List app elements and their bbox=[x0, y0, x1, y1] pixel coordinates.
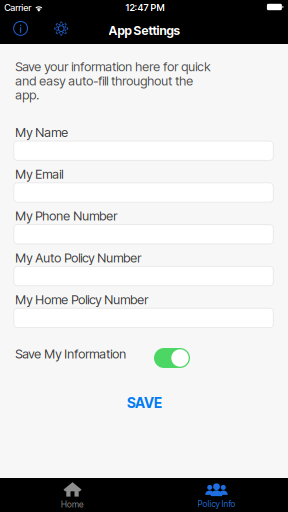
button[interactable]: Home bbox=[36, 481, 108, 509]
staticText: My Auto Policy Number bbox=[15, 250, 141, 265]
staticText: Save your information here for quick bbox=[15, 59, 210, 74]
staticText: Policy Info bbox=[197, 499, 235, 509]
staticText: app. bbox=[15, 87, 39, 103]
staticText: Home bbox=[61, 499, 84, 510]
staticText: 12:47 PM bbox=[125, 2, 164, 13]
staticText: My Name bbox=[15, 125, 68, 140]
staticText: My Email bbox=[15, 166, 63, 182]
staticText: SAVE bbox=[127, 394, 162, 411]
button[interactable]: Settings bbox=[47, 15, 75, 43]
staticText: My Home Policy Number bbox=[15, 292, 148, 307]
staticText: and easy auto-fill throughout the bbox=[15, 73, 193, 88]
button[interactable]: Policy Info bbox=[180, 481, 252, 509]
button[interactable]: Information bbox=[7, 14, 35, 42]
button[interactable]: SAVE bbox=[99, 392, 189, 414]
button[interactable]: Save My Information bbox=[151, 345, 193, 371]
staticText: App Settings bbox=[108, 23, 179, 38]
staticText: Save My Information bbox=[15, 346, 126, 362]
staticText: Carrier bbox=[4, 2, 31, 13]
staticText: My Phone Number bbox=[15, 208, 117, 224]
